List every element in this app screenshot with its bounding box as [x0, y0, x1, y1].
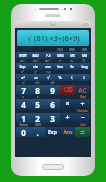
staticText: 0 — [21, 127, 26, 137]
staticText: x√y — [46, 70, 51, 74]
staticText: Formula — [77, 109, 88, 113]
button[interactable]: × — [60, 99, 75, 109]
staticText: DMS — [35, 123, 41, 127]
button[interactable]: 7 — [16, 85, 30, 95]
staticText: 6 — [50, 99, 55, 109]
button[interactable]: ⌫ — [60, 85, 75, 95]
staticText: RPN — [69, 48, 75, 52]
staticText: 9 — [50, 85, 55, 95]
staticText: Real — [50, 23, 56, 27]
staticText: √ — [47, 75, 50, 80]
button[interactable]: 4 — [16, 99, 30, 109]
staticText: 2 — [35, 113, 40, 123]
staticText: √ (81) ×3÷(6×9) — [27, 33, 80, 43]
button[interactable]: cos — [42, 63, 54, 70]
staticText: ⌫ — [63, 86, 73, 94]
staticText: DEG — [57, 48, 63, 52]
staticText: 1 — [21, 113, 26, 123]
staticText: − — [80, 113, 85, 123]
staticText: 3 — [50, 113, 55, 123]
staticText: cos — [45, 64, 51, 69]
staticText: cos⁻¹ — [33, 59, 39, 63]
staticText: Exp — [48, 129, 57, 136]
staticText: π — [22, 95, 24, 99]
button[interactable]: − — [75, 113, 90, 123]
staticText: 8 — [35, 85, 40, 95]
button[interactable]: Log — [78, 63, 90, 70]
button[interactable]: MR — [78, 52, 90, 59]
staticText: + — [65, 113, 70, 123]
button[interactable]: 3 — [45, 113, 60, 123]
staticText: tan⁻¹ — [45, 59, 51, 63]
staticText: 7 — [21, 85, 26, 95]
button[interactable]: Sep — [16, 63, 29, 70]
staticText: 4 — [21, 99, 26, 109]
button[interactable]: 1 — [16, 113, 30, 123]
button[interactable]: . — [30, 127, 45, 137]
button[interactable]: Exp — [45, 127, 60, 137]
staticText: RAD — [32, 54, 39, 58]
button[interactable]: AC — [75, 85, 90, 95]
staticText: e — [37, 95, 39, 99]
staticText: x² — [21, 75, 25, 80]
staticText: AC — [78, 86, 87, 95]
staticText: sin⁻¹ — [20, 59, 26, 63]
staticText: 5 — [35, 99, 40, 109]
staticText: y² — [34, 70, 37, 74]
staticText: DRG — [57, 54, 64, 58]
button[interactable]: SHIFT — [16, 52, 29, 59]
staticText: ( — [71, 75, 73, 81]
button[interactable]: 8 — [30, 85, 45, 95]
button[interactable]: + — [60, 113, 75, 123]
button[interactable]: ( — [66, 74, 78, 81]
staticText: nCr — [35, 81, 40, 85]
staticText: Sep — [19, 64, 26, 69]
staticText: SAMSUNG — [45, 14, 61, 18]
staticText: x! — [22, 81, 25, 85]
button[interactable]: 0 — [16, 127, 30, 137]
staticText: ln — [70, 64, 74, 69]
staticText: 3:55 — [83, 23, 89, 27]
button[interactable]: DRG — [54, 52, 66, 59]
staticText: . — [36, 127, 39, 137]
button[interactable]: 5 — [30, 99, 45, 109]
button[interactable]: 6 — [45, 99, 60, 109]
staticText: Ans — [63, 129, 73, 136]
staticText: F-E — [46, 54, 51, 58]
staticText: x³ — [21, 70, 24, 74]
staticText: tan — [57, 64, 63, 69]
button[interactable]: 2 — [30, 113, 45, 123]
button[interactable]: = — [75, 127, 90, 137]
staticText: Log — [81, 64, 88, 69]
staticText: % — [58, 75, 62, 80]
staticText: ÷ — [80, 99, 85, 109]
staticText: Unit — [80, 123, 86, 127]
button[interactable]: sin — [29, 63, 42, 70]
staticText: × — [65, 99, 70, 109]
button[interactable]: Ans — [60, 127, 75, 137]
button[interactable]: x² — [16, 74, 29, 81]
button[interactable]: tan — [54, 63, 66, 70]
button[interactable]: √ — [42, 74, 54, 81]
button[interactable]: √ (81) ×3÷(6×9) — [17, 30, 89, 46]
staticText: History — [19, 123, 28, 127]
staticText: nPr — [50, 81, 55, 85]
button[interactable]: ) — [78, 74, 90, 81]
button[interactable]: ln — [66, 63, 78, 70]
button[interactable]: Home — [42, 164, 64, 170]
button[interactable]: % — [54, 74, 66, 81]
staticText: = — [80, 127, 85, 137]
staticText: xʸ — [34, 75, 38, 80]
staticText: sin — [33, 64, 38, 69]
button[interactable]: 9 — [45, 85, 60, 95]
button[interactable]: xʸ — [29, 74, 42, 81]
button[interactable]: RAD — [29, 52, 42, 59]
button[interactable]: MS — [66, 52, 78, 59]
button[interactable]: F-E — [42, 52, 54, 59]
button[interactable]: ÷ — [75, 99, 90, 109]
staticText: BIN — [82, 48, 87, 52]
staticText: MR — [82, 54, 87, 58]
staticText: SHIFT — [19, 54, 27, 58]
staticText: MS — [70, 54, 75, 58]
staticText: x√ — [70, 59, 74, 63]
